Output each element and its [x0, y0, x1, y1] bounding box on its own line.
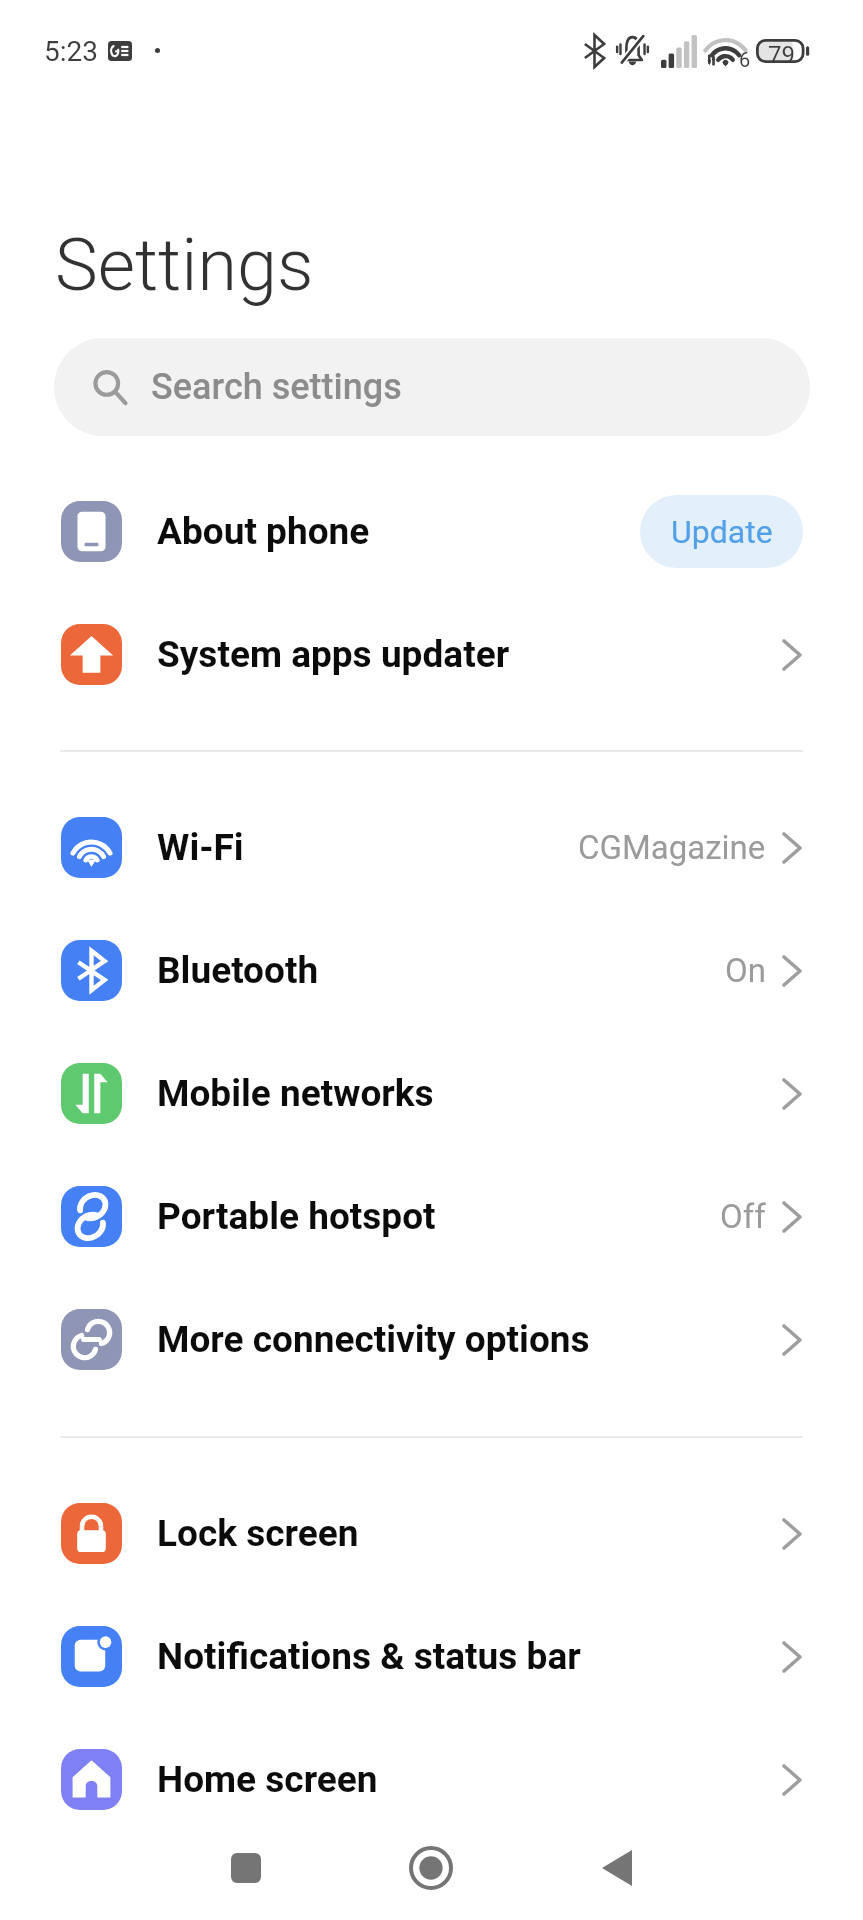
button[interactable]: Portable hotspot — [0, 1155, 863, 1278]
button[interactable]: Notifications & status bar — [0, 1595, 863, 1718]
staticText: Update — [671, 513, 773, 551]
staticText: CGMagazine — [578, 828, 766, 867]
staticText: 5:23 — [44, 35, 98, 68]
button[interactable]: Mobile networks — [0, 1032, 863, 1155]
staticText: About phone — [157, 510, 370, 553]
button[interactable]: About phone — [0, 470, 863, 593]
button[interactable]: Home — [391, 1843, 471, 1893]
button[interactable]: Wi-Fi — [0, 786, 863, 909]
staticText: Off — [720, 1197, 766, 1236]
staticText: 6 — [739, 48, 751, 71]
staticText: Mobile networks — [157, 1072, 434, 1115]
staticText: 79 — [768, 41, 795, 69]
button[interactable]: Back — [577, 1843, 657, 1893]
button[interactable]: Bluetooth — [0, 909, 863, 1032]
staticText: System apps updater — [157, 633, 510, 676]
button[interactable]: Lock screen — [0, 1472, 863, 1595]
staticText: Wi-Fi — [157, 826, 244, 869]
staticText: On — [725, 951, 766, 990]
button[interactable]: Recents — [206, 1843, 286, 1893]
button[interactable]: Search settings — [54, 338, 810, 436]
staticText: More connectivity options — [157, 1318, 590, 1361]
staticText: Home screen — [157, 1758, 378, 1801]
staticText: Portable hotspot — [157, 1195, 436, 1238]
button[interactable]: More connectivity options — [0, 1278, 863, 1401]
staticText: Search settings — [151, 366, 402, 408]
button[interactable]: Update — [640, 495, 803, 568]
staticText: Bluetooth — [157, 949, 319, 992]
button[interactable]: System apps updater — [0, 593, 863, 716]
button[interactable]: Home screen — [0, 1718, 863, 1841]
staticText: Lock screen — [157, 1512, 359, 1555]
staticText: Notifications & status bar — [157, 1635, 581, 1678]
staticText: Settings — [55, 223, 314, 307]
